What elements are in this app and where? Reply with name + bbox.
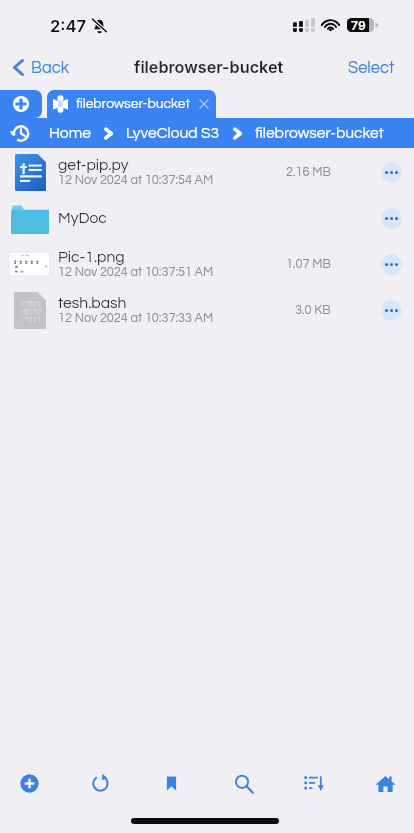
button[interactable]: Sort <box>290 759 338 807</box>
staticText: tesh.bash <box>58 295 127 311</box>
button[interactable]: Back <box>0 59 79 76</box>
button[interactable]: History <box>9 124 31 143</box>
button[interactable]: Bookmarks <box>147 759 195 807</box>
button[interactable]: Search <box>219 759 267 807</box>
staticText: Pic-1.png <box>58 249 125 265</box>
staticText: MyDoc <box>58 210 107 226</box>
staticText: Select <box>348 59 395 76</box>
button[interactable]: More options <box>381 162 402 183</box>
staticText: get-pip.py <box>58 157 129 173</box>
button[interactable]: Home <box>49 125 91 141</box>
staticText: 12 Nov 2024 at 10:37:54 AM <box>58 174 214 187</box>
staticText: 3.0 KB <box>295 304 331 317</box>
button[interactable]: Home <box>361 759 409 807</box>
staticText: 12 Nov 2024 at 10:37:51 AM <box>58 266 214 279</box>
staticText: 79 <box>351 18 366 32</box>
button[interactable]: Add <box>5 759 53 807</box>
button[interactable]: Close tab <box>200 100 208 108</box>
staticText: 12 Nov 2024 at 10:37:33 AM <box>58 312 214 325</box>
staticText: 1.07 MB <box>286 258 331 271</box>
button[interactable]: More options <box>381 300 402 321</box>
staticText: Back <box>31 59 69 76</box>
staticText: 10110 <box>20 308 41 316</box>
staticText: 2.16 MB <box>286 166 331 179</box>
button[interactable]: MyDoc <box>0 195 414 241</box>
button[interactable]: More options <box>381 208 402 229</box>
button[interactable]: New tab <box>0 90 42 118</box>
button[interactable]: Refresh <box>76 759 124 807</box>
button[interactable]: get-pip.py <box>0 149 414 195</box>
button[interactable]: More options <box>381 254 402 275</box>
button[interactable]: LyveCloud S3 <box>126 125 220 141</box>
button[interactable]: 01001 <box>0 287 414 333</box>
button[interactable]: filebrowser-bucket <box>255 125 384 141</box>
button[interactable]: Select <box>332 59 414 76</box>
staticText: filebrowser-bucket <box>76 97 190 111</box>
staticText: 01001 <box>20 300 41 308</box>
button[interactable]: Pic-1.png <box>0 241 414 287</box>
staticText: filebrowser-bucket <box>134 57 284 77</box>
staticText: 2:47 <box>50 16 87 36</box>
button[interactable]: filebrowser-bucket <box>47 90 216 118</box>
staticText: 11011 <box>20 316 41 324</box>
